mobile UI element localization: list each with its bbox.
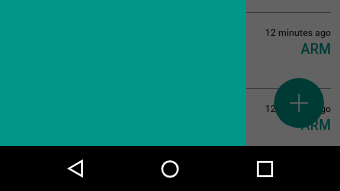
button[interactable]: Close navigation drawer	[0, 0, 340, 146]
staticText: ARM	[9, 117, 331, 133]
button[interactable]: 12 minutes ago	[9, 103, 331, 130]
staticText: ARM	[9, 41, 331, 57]
staticText: 12 minutes ago	[9, 27, 331, 38]
button[interactable]: Home	[147, 146, 192, 191]
staticText: 12 minutes ago	[9, 103, 331, 114]
button[interactable]: Recent apps	[242, 146, 287, 191]
button[interactable]: Back	[53, 146, 98, 191]
button[interactable]: 12 minutes ago	[9, 27, 331, 54]
button[interactable]: Add event	[274, 78, 324, 128]
